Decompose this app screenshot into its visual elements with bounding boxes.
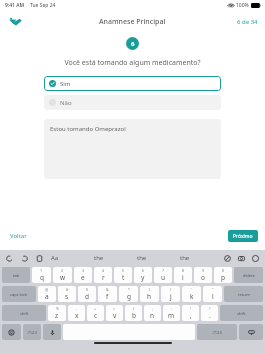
staticText: j: [170, 292, 172, 301]
button[interactable]: caps lock: [2, 286, 36, 302]
staticText: u: [161, 273, 166, 282]
button[interactable]: 0: [214, 267, 232, 283]
staticText: q: [40, 273, 44, 282]
button[interactable]: Aa: [50, 253, 60, 263]
staticText: (: [149, 287, 151, 292]
button[interactable]: Format: [223, 254, 232, 263]
button[interactable]: 9: [194, 267, 212, 283]
button[interactable]: Hide keyboard: [239, 324, 263, 340]
staticText: .?123: [212, 330, 222, 335]
button[interactable]: 3: [74, 267, 92, 283]
staticText: o: [201, 273, 205, 282]
button[interactable]: delete: [234, 267, 263, 283]
staticText: /: [133, 306, 135, 311]
button[interactable]: %: [48, 305, 66, 321]
button[interactable]: 1: [32, 267, 51, 283]
button[interactable]: 5: [114, 267, 132, 283]
button[interactable]: the: [137, 254, 147, 262]
staticText: ,: [190, 311, 192, 320]
staticText: return: [238, 292, 250, 297]
button[interactable]: .?123: [197, 324, 237, 340]
staticText: a: [45, 292, 49, 301]
staticText: 1: [40, 268, 43, 273]
button[interactable]: :: [163, 305, 180, 321]
button[interactable]: ): [161, 286, 180, 302]
staticText: Estou tomando Omeprazol: [50, 125, 126, 133]
button[interactable]: Logo: [8, 14, 24, 30]
staticText: n: [150, 311, 155, 320]
button[interactable]: &: [98, 286, 117, 302]
button[interactable]: Emoji: [2, 324, 21, 340]
button[interactable]: Undo: [5, 254, 14, 263]
staticText: c: [94, 311, 98, 320]
button[interactable]: 7: [154, 267, 172, 283]
button[interactable]: the: [94, 254, 104, 262]
button[interactable]: Próximo: [228, 230, 258, 242]
button[interactable]: 4: [94, 267, 112, 283]
button[interactable]: Estou tomando Omeprazol: [44, 119, 221, 179]
staticText: f: [106, 292, 109, 301]
staticText: l: [212, 292, 214, 301]
staticText: w: [60, 273, 66, 282]
button[interactable]: shift: [220, 305, 263, 321]
button[interactable]: 2: [53, 267, 72, 283]
button[interactable]: !: [182, 305, 199, 321]
button[interactable]: ": [203, 286, 222, 302]
staticText: ": [212, 287, 214, 292]
staticText: 9:41 AM: [5, 2, 25, 9]
button[interactable]: tab: [2, 267, 30, 283]
staticText: g: [127, 292, 131, 301]
button[interactable]: @: [38, 286, 56, 302]
staticText: Voltar: [10, 232, 27, 240]
button[interactable]: 6 de 34: [237, 18, 258, 26]
staticText: shift: [20, 311, 29, 316]
staticText: .?123: [27, 330, 37, 335]
button[interactable]: ': [182, 286, 201, 302]
button[interactable]: +: [87, 305, 104, 321]
button[interactable]: Dictation: [43, 324, 61, 340]
button[interactable]: Camera: [237, 254, 246, 263]
button[interactable]: the: [180, 254, 190, 262]
button[interactable]: $: [78, 286, 96, 302]
staticText: @: [45, 287, 49, 292]
button[interactable]: return: [224, 286, 263, 302]
staticText: m: [168, 311, 175, 320]
button[interactable]: More: [251, 254, 260, 263]
button[interactable]: -: [68, 305, 85, 321]
staticText: shift: [237, 311, 246, 316]
button[interactable]: #: [58, 286, 76, 302]
staticText: =: [113, 306, 116, 311]
staticText: 3: [82, 268, 85, 273]
staticText: +: [94, 306, 97, 311]
button[interactable]: shift: [2, 305, 46, 321]
staticText: d: [85, 292, 89, 301]
button[interactable]: *: [119, 286, 138, 302]
staticText: ;: [152, 306, 153, 311]
button[interactable]: =: [106, 305, 123, 321]
staticText: v: [113, 311, 117, 320]
button[interactable]: Sim: [44, 76, 221, 91]
staticText: Próximo: [233, 233, 253, 240]
staticText: *: [128, 287, 130, 292]
button[interactable]: 6: [134, 267, 152, 283]
staticText: ': [191, 287, 192, 292]
button[interactable]: Voltar: [6, 230, 31, 242]
button[interactable]: /: [125, 305, 142, 321]
button[interactable]: 8: [174, 267, 192, 283]
staticText: Tue Sep 24: [30, 2, 56, 9]
button[interactable]: Paste: [35, 254, 44, 263]
staticText: i: [182, 273, 184, 282]
button[interactable]: Não: [44, 95, 221, 110]
staticText: .: [209, 311, 211, 320]
staticText: Aa: [51, 254, 59, 262]
staticText: 8: [182, 268, 185, 273]
staticText: z: [55, 311, 59, 320]
staticText: Anamnese Principal: [99, 17, 166, 27]
button[interactable]: ?: [201, 305, 218, 321]
button[interactable]: ;: [144, 305, 161, 321]
button[interactable]: .?123: [23, 324, 41, 340]
button[interactable]: (: [140, 286, 159, 302]
button[interactable]: Redo: [20, 254, 29, 263]
